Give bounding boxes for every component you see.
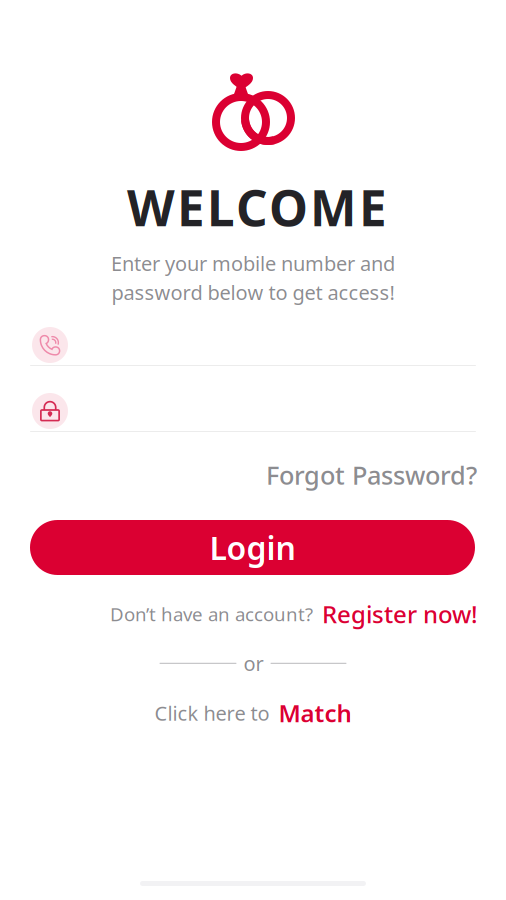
button[interactable]: Login (30, 520, 475, 575)
staticText: WELCOME (127, 174, 387, 240)
staticText: Login (209, 526, 295, 569)
staticText: Register now! (322, 598, 478, 630)
button[interactable]: Register now! (322, 598, 478, 630)
staticText: Match (278, 697, 351, 729)
button[interactable]: Forgot Password? (266, 458, 477, 492)
staticText: Click here to (154, 700, 269, 726)
staticText: or (243, 650, 263, 677)
staticText: Forgot Password? (266, 458, 477, 492)
staticText: password below to get access! (111, 279, 394, 306)
button[interactable]: Click here to (154, 697, 351, 729)
staticText: Enter your mobile number and (111, 250, 395, 277)
staticText: Don’t have an account? (110, 601, 313, 626)
